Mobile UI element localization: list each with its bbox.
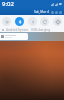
staticText: 9:02 [2,0,14,8]
staticText: Android System [6,28,29,32]
button[interactable]: Location [53,17,62,26]
button[interactable]: Wi-Fi [2,17,11,26]
staticText: Sat, Mar 4 [34,10,50,14]
button[interactable]: Header action 1 [55,11,58,14]
button[interactable]: Header action 2 [59,11,62,14]
button[interactable]: Auto-rotate [40,17,49,26]
button[interactable]: Bluetooth [15,17,24,26]
staticText: USB charging [31,28,51,32]
button[interactable]: Header action 0 [51,11,54,14]
button[interactable]: Flashlight [28,17,37,26]
button[interactable] [0,33,28,40]
